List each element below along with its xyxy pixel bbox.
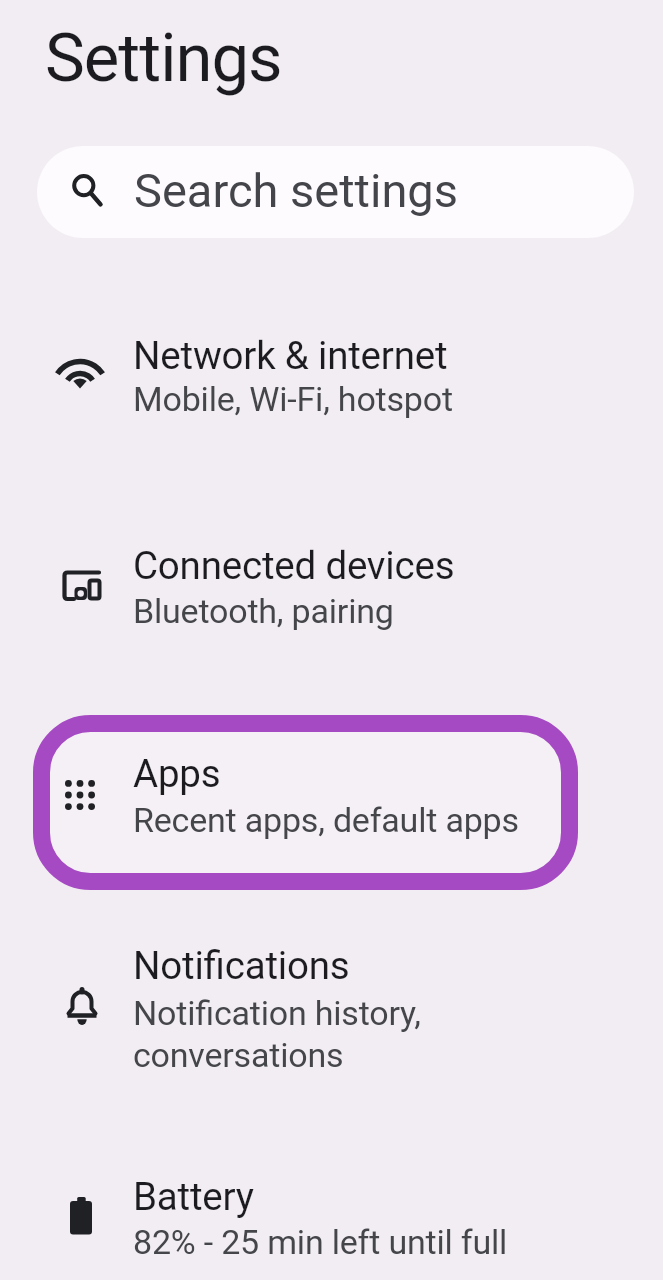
staticText: Mobile, Wi-Fi, hotspot (133, 379, 453, 419)
staticText: Recent apps, default apps (133, 800, 519, 840)
staticText: Notifications (133, 943, 350, 988)
button[interactable]: Apps (0, 691, 663, 901)
button[interactable]: Connected devices (0, 481, 663, 691)
staticText: Notification history, (133, 993, 421, 1033)
button[interactable]: Notifications (0, 901, 663, 1111)
staticText: conversations (133, 1035, 344, 1075)
staticText: Search settings (134, 163, 458, 218)
button[interactable]: Search settings (37, 146, 634, 238)
button[interactable]: Battery (0, 1111, 663, 1280)
staticText: Network & internet (133, 333, 448, 378)
staticText: Connected devices (133, 543, 455, 588)
staticText: Bluetooth, pairing (133, 591, 394, 631)
button[interactable]: Network & internet (0, 271, 663, 481)
staticText: Settings (45, 19, 282, 98)
staticText: Battery (133, 1174, 254, 1219)
staticText: 82% - 25 min left until full (133, 1222, 508, 1262)
staticText: Apps (133, 751, 221, 796)
